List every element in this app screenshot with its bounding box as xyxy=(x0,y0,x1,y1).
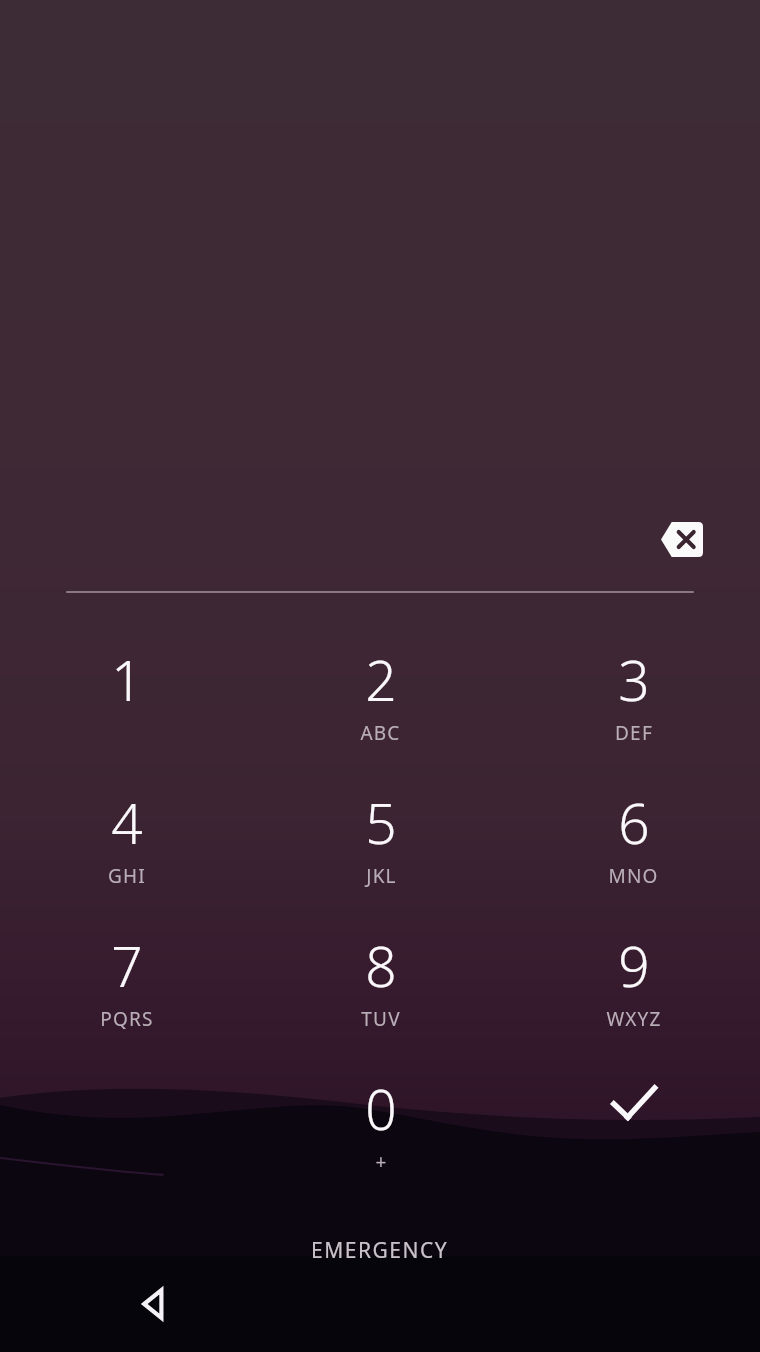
staticText: DEF xyxy=(615,720,653,746)
staticText: + xyxy=(375,1149,388,1175)
staticText: 1 xyxy=(111,642,143,717)
button[interactable]: 5 xyxy=(254,785,507,928)
button[interactable]: 0 xyxy=(254,1071,507,1214)
staticText: PQRS xyxy=(100,1006,154,1032)
button[interactable]: 4 xyxy=(0,785,254,928)
staticText: 9 xyxy=(618,928,650,1003)
staticText: WXYZ xyxy=(606,1006,662,1032)
button[interactable]: 7 xyxy=(0,928,254,1071)
button[interactable]: 9 xyxy=(507,928,760,1071)
staticText: 0 xyxy=(365,1071,397,1146)
staticText: EMERGENCY xyxy=(311,1236,449,1265)
staticText: JKL xyxy=(366,863,397,889)
button[interactable]: 1 xyxy=(0,642,254,785)
staticText: 6 xyxy=(618,785,650,860)
staticText: 2 xyxy=(365,642,397,717)
staticText: TUV xyxy=(361,1006,401,1032)
staticText: GHI xyxy=(108,863,146,889)
button[interactable]: Back xyxy=(120,1271,186,1337)
button[interactable]: EMERGENCY xyxy=(283,1222,477,1279)
staticText: 4 xyxy=(111,785,143,860)
button[interactable]: Delete xyxy=(652,509,712,569)
button[interactable]: Enter xyxy=(507,1071,760,1214)
staticText: 5 xyxy=(365,785,397,860)
button[interactable]: 2 xyxy=(254,642,507,785)
button[interactable]: 6 xyxy=(507,785,760,928)
staticText: MNO xyxy=(608,863,659,889)
staticText: 7 xyxy=(111,928,143,1003)
staticText: ABC xyxy=(360,720,401,746)
staticText: 8 xyxy=(365,928,397,1003)
staticText: 3 xyxy=(618,642,650,717)
button[interactable]: 3 xyxy=(507,642,760,785)
button[interactable]: 8 xyxy=(254,928,507,1071)
